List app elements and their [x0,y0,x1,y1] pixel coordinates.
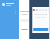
button[interactable]: Continue [33,28,48,31]
button[interactable]: Profile [0,0,14,6]
